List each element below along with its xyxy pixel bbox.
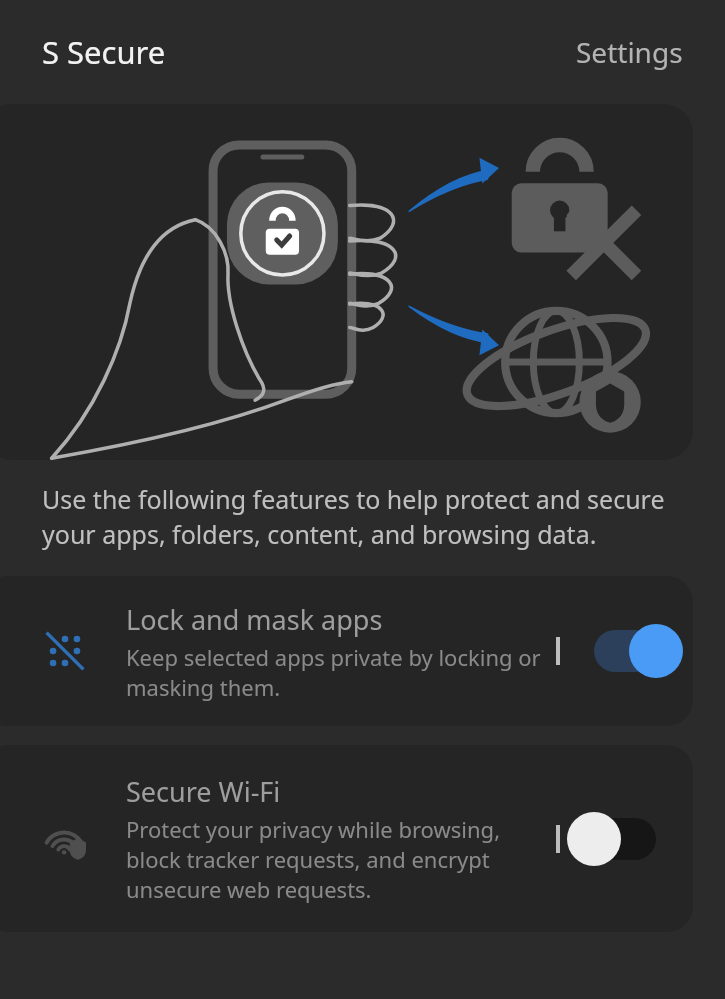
button[interactable]: Lock and mask apps — [0, 576, 693, 726]
staticText: Lock and mask apps — [126, 601, 383, 638]
staticText: Use the following features to help prote… — [42, 482, 665, 552]
button[interactable]: Lock and mask apps toggle — [579, 621, 671, 681]
staticText: Keep selected apps private by locking or… — [126, 642, 546, 702]
staticText: S Secure — [42, 31, 166, 73]
button[interactable]: Secure Wi-Fi — [0, 745, 693, 932]
button[interactable]: Secure Wi-Fi toggle — [579, 809, 671, 869]
staticText: Protect your privacy while browsing, blo… — [126, 814, 546, 904]
other: Lock and mask apps — [42, 628, 88, 674]
button[interactable]: Settings — [564, 25, 695, 79]
other: Secure Wi-Fi — [42, 816, 88, 862]
staticText: Settings — [576, 33, 683, 71]
staticText: Secure Wi-Fi — [126, 773, 281, 810]
